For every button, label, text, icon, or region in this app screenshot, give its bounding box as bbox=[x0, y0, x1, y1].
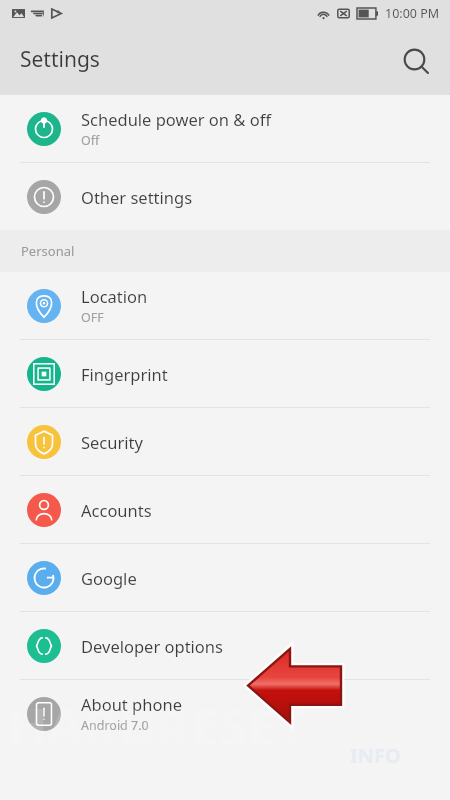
staticText: Settings bbox=[20, 45, 100, 74]
staticText: HARDRESET bbox=[8, 690, 450, 761]
staticText: Personal bbox=[21, 242, 75, 260]
staticText: Security bbox=[81, 431, 143, 453]
staticText: Schedule power on & off bbox=[81, 108, 272, 130]
staticText: Fingerprint bbox=[81, 363, 168, 385]
staticText: Android 7.0 bbox=[81, 717, 149, 734]
button[interactable]: Location bbox=[0, 272, 450, 339]
staticText: About phone bbox=[81, 693, 182, 715]
staticText: Developer options bbox=[81, 635, 223, 657]
staticText: Google bbox=[81, 567, 137, 589]
staticText: Other settings bbox=[81, 186, 193, 208]
button[interactable]: About phone bbox=[0, 680, 450, 747]
staticText: OFF bbox=[81, 309, 104, 326]
staticText: INFO bbox=[350, 742, 401, 769]
button[interactable]: Other settings bbox=[0, 163, 450, 230]
staticText: 10:00 PM bbox=[385, 5, 440, 22]
button[interactable]: Search bbox=[392, 37, 440, 85]
button[interactable]: Security bbox=[0, 408, 450, 475]
button[interactable]: Developer options bbox=[0, 612, 450, 679]
button[interactable]: Schedule power on & off bbox=[0, 95, 450, 162]
staticText: Off bbox=[81, 132, 100, 149]
button[interactable]: Google bbox=[0, 544, 450, 611]
staticText: Accounts bbox=[81, 499, 152, 521]
button[interactable]: Fingerprint bbox=[0, 340, 450, 407]
staticText: Location bbox=[81, 285, 148, 307]
button[interactable]: Accounts bbox=[0, 476, 450, 543]
